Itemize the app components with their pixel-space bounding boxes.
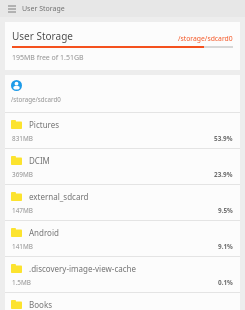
- button[interactable]: external_sdcard: [5, 185, 240, 220]
- staticText: 23.9%: [214, 170, 233, 179]
- staticText: 53.9%: [214, 134, 233, 143]
- staticText: 1.5MB: [12, 278, 31, 287]
- staticText: .discovery-image-view-cache: [29, 263, 137, 274]
- staticText: User Storage: [12, 29, 73, 43]
- button[interactable]: /storage/sdcard0: [5, 75, 240, 112]
- staticText: 141MB: [12, 242, 33, 251]
- button[interactable]: Open navigation drawer: [5, 2, 18, 15]
- staticText: 9.5%: [218, 206, 233, 215]
- button[interactable]: Pictures: [5, 113, 240, 148]
- button[interactable]: Books: [5, 293, 240, 310]
- staticText: Books: [29, 299, 52, 310]
- staticText: external_sdcard: [29, 191, 89, 202]
- button[interactable]: Android: [5, 221, 240, 256]
- staticText: User Storage: [22, 4, 65, 14]
- staticText: DCIM: [29, 155, 50, 166]
- staticText: 831MB: [12, 134, 33, 143]
- button[interactable]: DCIM: [5, 149, 240, 184]
- staticText: 195MB free of 1.51GB: [12, 53, 84, 63]
- button[interactable]: User Storage: [5, 22, 240, 70]
- staticText: Android: [29, 227, 59, 238]
- staticText: /storage/sdcard0: [178, 34, 233, 43]
- staticText: 9.1%: [218, 242, 233, 251]
- staticText: 369MB: [12, 170, 33, 179]
- staticText: 147MB: [12, 206, 33, 215]
- staticText: 0.1%: [218, 278, 233, 287]
- staticText: /storage/sdcard0: [11, 95, 61, 103]
- button[interactable]: .discovery-image-view-cache: [5, 257, 240, 292]
- staticText: Pictures: [29, 119, 60, 130]
